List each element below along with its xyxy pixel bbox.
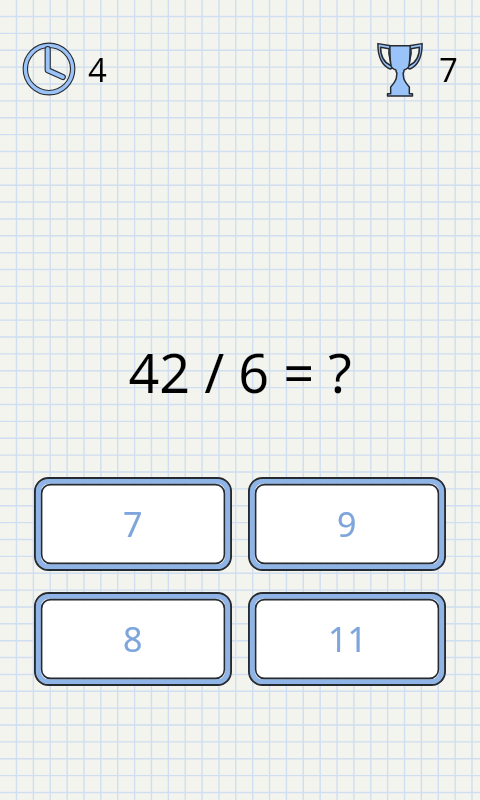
button[interactable]: Time remaining	[22, 42, 107, 96]
button[interactable]: 9	[248, 477, 446, 571]
staticText: 7	[439, 47, 458, 92]
staticText: 42 / 6 = ?	[128, 335, 352, 409]
staticText: 9	[337, 501, 357, 547]
button[interactable]: 8	[34, 592, 232, 686]
button[interactable]: 7	[34, 477, 232, 571]
button[interactable]: Best score	[377, 42, 458, 96]
other: Best score	[377, 42, 423, 96]
staticText: 7	[123, 501, 143, 547]
staticText: 11	[328, 616, 367, 662]
staticText: 8	[123, 616, 143, 662]
staticText: 4	[88, 47, 107, 92]
other: Time remaining	[22, 42, 76, 96]
button[interactable]: 11	[248, 592, 446, 686]
